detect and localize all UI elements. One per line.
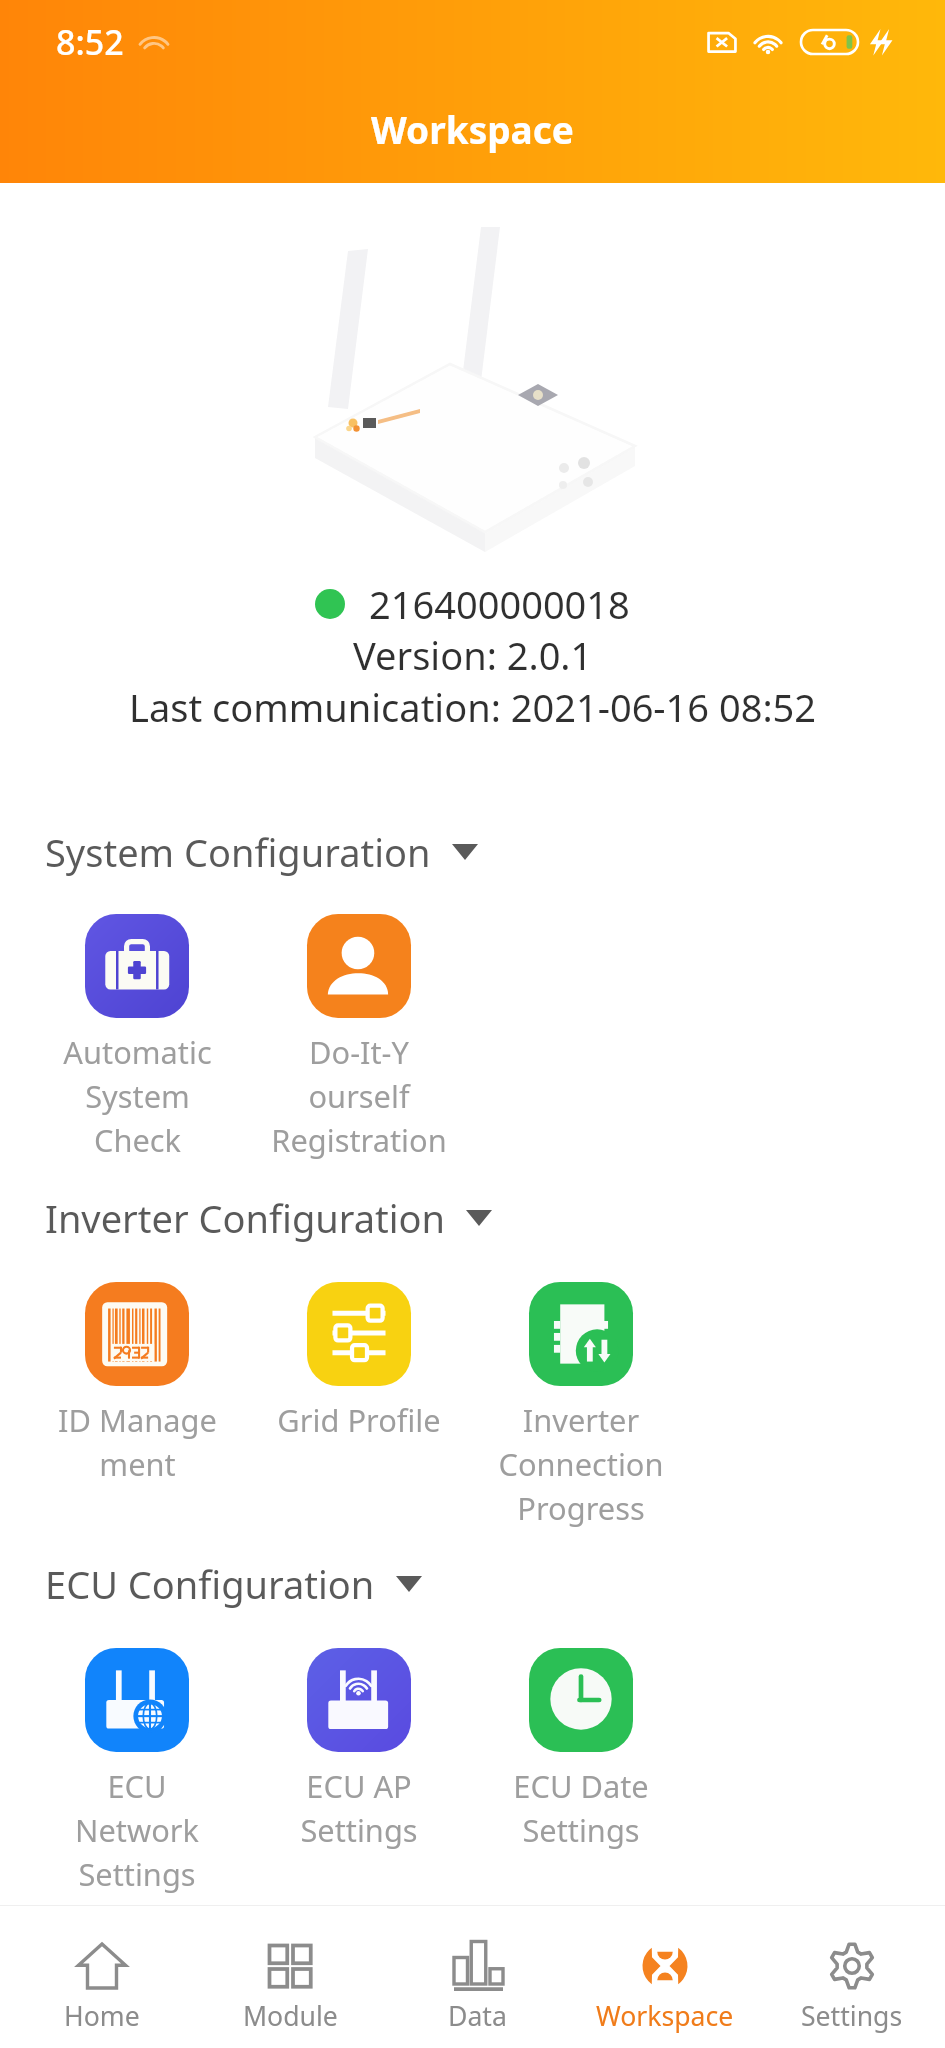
staticText: 216400000018: [369, 578, 630, 629]
button[interactable]: ECU Date Settings: [470, 1648, 692, 1851]
button[interactable]: ECU AP Settings: [248, 1648, 470, 1851]
button[interactable]: Workspace: [571, 1906, 758, 2048]
staticText: Version: 2.0.1: [353, 629, 593, 681]
staticText: Workspace: [596, 1998, 734, 2034]
button[interactable]: Inverter Connection Progress: [470, 1282, 692, 1529]
staticText: Module: [243, 1998, 338, 2034]
staticText: Do-It-Y ourself Registration: [271, 1031, 447, 1161]
staticText: ID Manage ment: [58, 1399, 217, 1485]
button[interactable]: Automatic System Check: [26, 914, 248, 1161]
staticText: ECU Date Settings: [513, 1765, 649, 1851]
staticText: Data: [448, 1998, 507, 2034]
button[interactable]: ECU Network Settings: [26, 1648, 248, 1895]
button[interactable]: ID Management: [26, 1282, 248, 1485]
button[interactable]: Do-It-Yourself Registration: [248, 914, 470, 1161]
staticText: ECU Network Settings: [75, 1765, 199, 1895]
staticText: 8:52: [56, 19, 124, 65]
button[interactable]: Data: [384, 1906, 571, 2048]
staticText: Settings: [801, 1998, 903, 2034]
staticText: ECU Configuration: [45, 1558, 375, 1610]
staticText: Workspace: [371, 104, 574, 154]
staticText: Automatic System Check: [63, 1031, 212, 1161]
staticText: Grid Profile: [277, 1399, 441, 1441]
staticText: Last communication: 2021-06-16 08:52: [129, 681, 817, 733]
staticText: Inverter Configuration: [45, 1192, 445, 1244]
button[interactable]: System Configuration: [0, 818, 945, 886]
staticText: ECU AP Settings: [300, 1765, 418, 1851]
staticText: Inverter Connection Progress: [498, 1399, 664, 1529]
button[interactable]: Grid Profile: [248, 1282, 470, 1441]
button[interactable]: ECU Configuration: [0, 1550, 945, 1618]
staticText: System Configuration: [45, 826, 431, 878]
button[interactable]: Module: [196, 1906, 384, 2048]
button[interactable]: Inverter Configuration: [0, 1184, 945, 1252]
button[interactable]: Home: [8, 1906, 196, 2048]
button[interactable]: Settings: [758, 1906, 945, 2048]
staticText: Home: [64, 1998, 140, 2034]
